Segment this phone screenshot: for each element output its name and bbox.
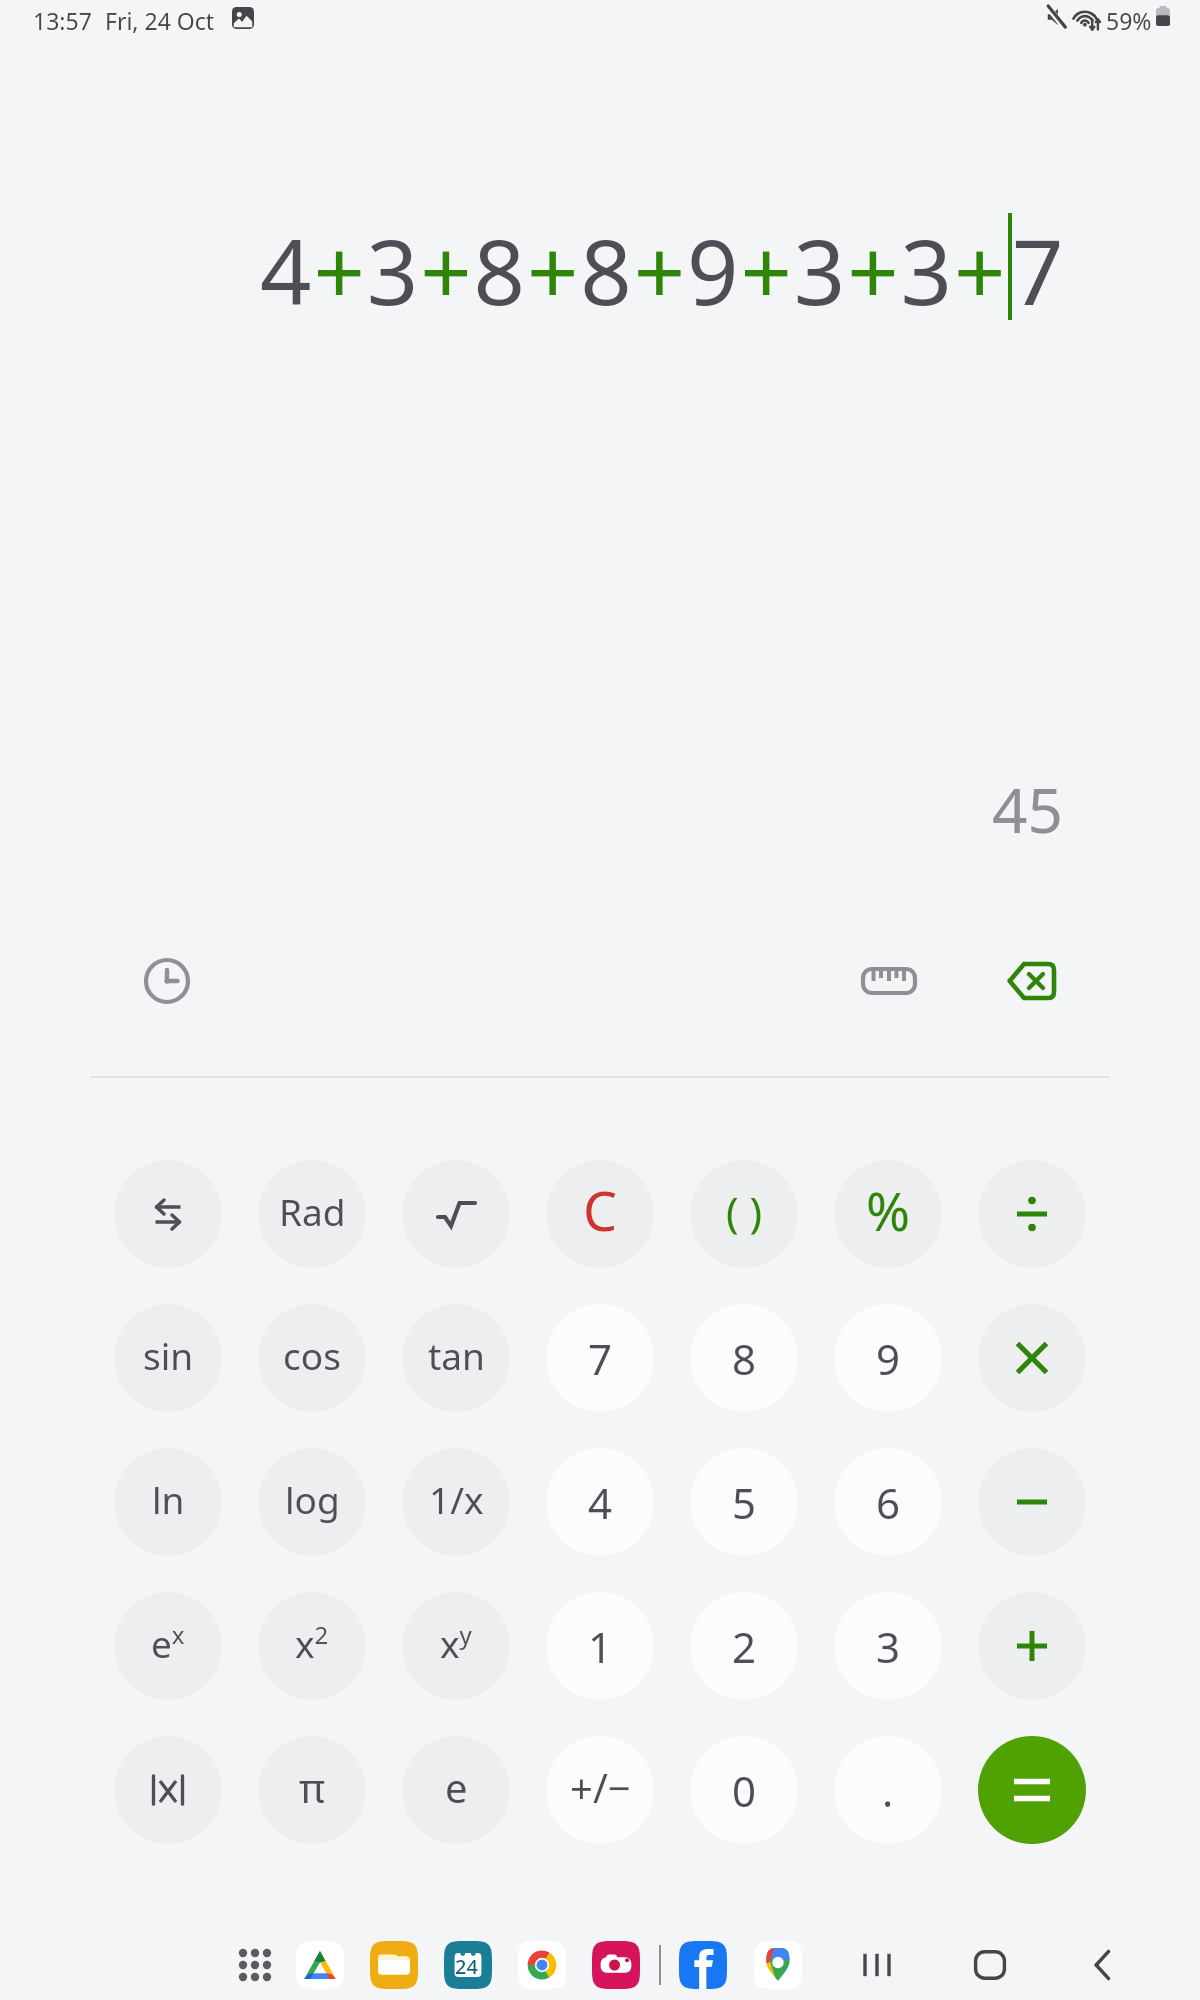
button[interactable]: . [834,1736,942,1844]
button[interactable]: 7 [546,1304,654,1412]
button[interactable]: Apps [231,1941,279,1989]
button[interactable]: Backspace [987,937,1075,1025]
staticText: 3 [876,1618,901,1675]
staticText: 0 [732,1762,757,1819]
button[interactable]: App [754,1941,802,1989]
button[interactable]: App [518,1941,566,1989]
staticText: log [285,1474,340,1524]
button[interactable]: ln [114,1448,222,1556]
button[interactable] [402,1160,510,1268]
staticText: x2 [295,1618,329,1668]
button[interactable] [978,1448,1086,1556]
button[interactable]: 4 [546,1448,654,1556]
staticText: C [583,1173,618,1247]
staticText: 24 [455,1953,478,1980]
staticText: xy [440,1618,472,1668]
button[interactable]: tan [402,1304,510,1412]
staticText: ( ) [726,1183,763,1240]
button[interactable]: Rad [258,1160,366,1268]
button[interactable]: +/− [546,1736,654,1844]
button[interactable]: 1 [546,1592,654,1700]
button[interactable]: π [258,1736,366,1844]
staticText: 4+3+8+8+9+3+3+ [260,209,1008,332]
button[interactable]: sin [114,1304,222,1412]
button[interactable] [114,1736,222,1844]
staticText: sin [143,1330,194,1380]
staticText: +/− [570,1760,631,1814]
button[interactable]: log [258,1448,366,1556]
staticText: π [299,1760,326,1814]
staticText: 1 [588,1618,613,1675]
staticText: % [866,1174,911,1246]
button[interactable]: 0 [690,1736,798,1844]
button[interactable]: e [402,1736,510,1844]
staticText: 59% [1106,5,1152,36]
button[interactable]: ( ) [690,1160,798,1268]
button[interactable]: 2 [690,1592,798,1700]
button[interactable] [114,1160,222,1268]
button[interactable] [978,1304,1086,1412]
button[interactable] [978,1592,1086,1700]
button[interactable]: % [834,1160,942,1268]
button[interactable]: 9 [834,1304,942,1412]
staticText: 8 [732,1330,757,1387]
staticText: 9 [876,1330,901,1387]
staticText: 5 [732,1474,757,1531]
button[interactable]: App [370,1941,418,1989]
staticText: cos [283,1330,341,1380]
staticText: Fri, 24 Oct [105,5,215,36]
button[interactable] [978,1160,1086,1268]
staticText: 2 [732,1618,757,1675]
button[interactable]: App [444,1941,492,1989]
button[interactable]: 3 [834,1592,942,1700]
button[interactable]: Recents [845,1933,909,1997]
button[interactable]: Home [958,1933,1022,1997]
staticText: 45 [992,767,1063,851]
button[interactable]: App [592,1941,640,1989]
button[interactable]: cos [258,1304,366,1412]
button[interactable]: C [546,1160,654,1268]
staticText: tan [428,1330,485,1380]
button[interactable]: 8 [690,1304,798,1412]
button[interactable]: 6 [834,1448,942,1556]
button[interactable]: History [123,937,211,1025]
button[interactable]: Unit converter [845,937,933,1025]
staticText: ex [151,1618,185,1668]
staticText: e [445,1760,468,1814]
button[interactable] [978,1736,1086,1844]
staticText: . [882,1762,894,1819]
staticText: 6 [876,1474,901,1531]
staticText: Rad [279,1186,346,1236]
button[interactable]: 1/x [402,1448,510,1556]
button[interactable]: App [679,1941,727,1989]
button[interactable]: ex [114,1592,222,1700]
button[interactable]: App [296,1941,344,1989]
button[interactable]: xy [402,1592,510,1700]
button[interactable]: Back [1071,1933,1135,1997]
staticText: 4 [588,1474,613,1531]
staticText: 1/x [429,1474,484,1524]
staticText: 7 [1012,209,1064,332]
staticText: ln [152,1474,185,1524]
button[interactable]: x2 [258,1592,366,1700]
button[interactable]: 5 [690,1448,798,1556]
staticText: 13:57 [33,5,92,36]
staticText: 7 [588,1330,613,1387]
